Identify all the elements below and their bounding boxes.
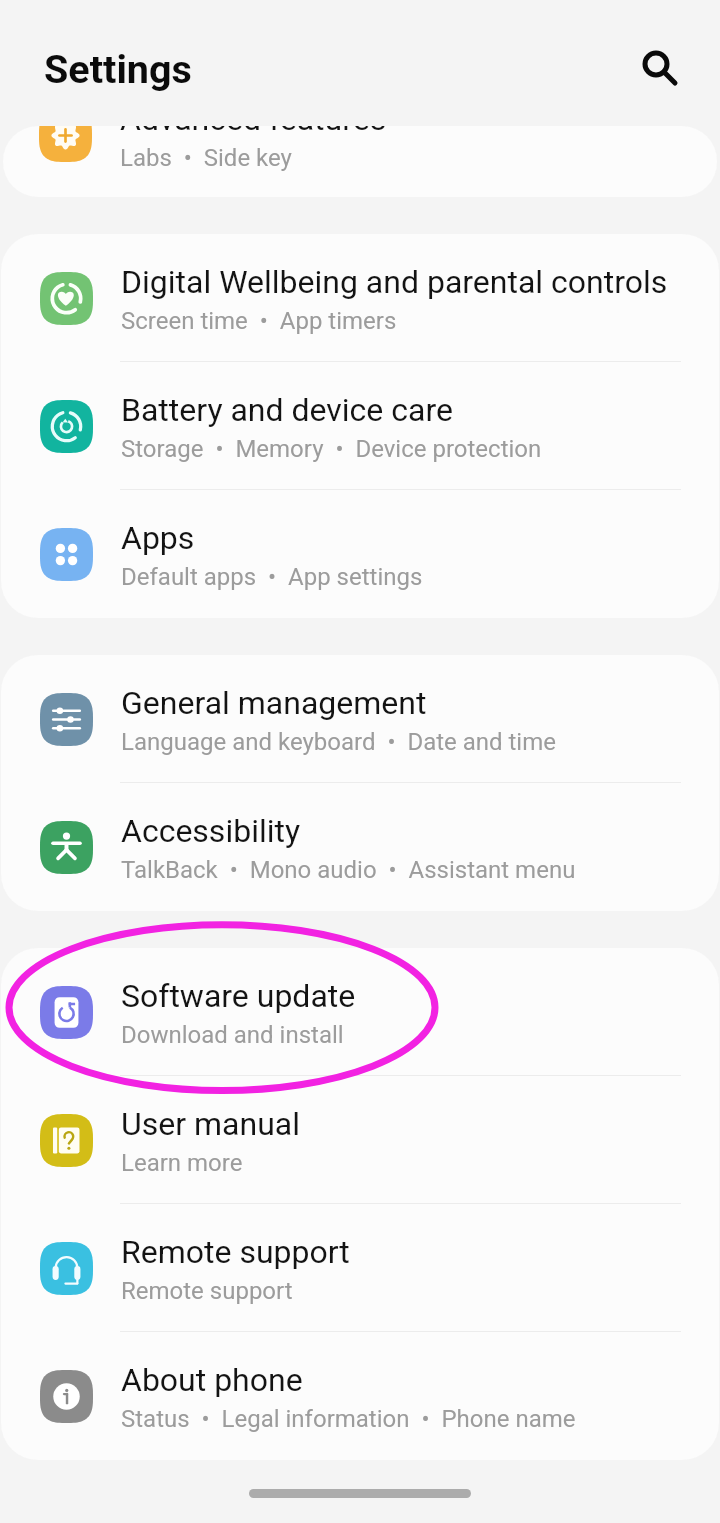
staticText: Accessibility <box>121 812 301 850</box>
staticText: Status • Legal information • Phone name <box>121 1405 576 1433</box>
button[interactable]: General management <box>1 655 719 783</box>
button[interactable]: About phone <box>1 1332 719 1460</box>
staticText: General management <box>121 684 427 722</box>
staticText: Language and keyboard • Date and time <box>121 728 556 756</box>
staticText: Remote support <box>121 1277 293 1305</box>
button[interactable]: Apps <box>1 490 719 618</box>
staticText: Battery and device care <box>121 391 453 429</box>
staticText: Remote support <box>121 1233 350 1271</box>
staticText: Digital Wellbeing and parental controls <box>121 263 668 301</box>
staticText: Learn more <box>121 1149 243 1177</box>
staticText: About phone <box>121 1361 303 1399</box>
staticText: Labs • Side key <box>120 144 292 172</box>
staticText: Download and install <box>121 1021 344 1049</box>
button[interactable]: User manual <box>1 1076 719 1204</box>
staticText: Settings <box>44 46 192 92</box>
staticText: Storage • Memory • Device protection <box>121 435 542 463</box>
button[interactable]: Software update <box>1 948 719 1076</box>
staticText: Default apps • App settings <box>121 563 423 591</box>
button[interactable]: Advanced features <box>3 126 714 142</box>
staticText: Advanced features <box>120 126 387 138</box>
button[interactable]: Battery and device care <box>1 362 719 490</box>
button[interactable]: Digital Wellbeing and parental controls <box>1 234 719 362</box>
staticText: TalkBack • Mono audio • Assistant menu <box>121 856 576 884</box>
button[interactable]: Remote support <box>1 1204 719 1332</box>
button[interactable]: Search <box>620 28 692 100</box>
staticText: User manual <box>121 1105 300 1143</box>
staticText: Screen time • App timers <box>121 307 397 335</box>
button[interactable]: Accessibility <box>1 783 719 911</box>
staticText: Apps <box>121 519 195 557</box>
staticText: Software update <box>121 977 356 1015</box>
